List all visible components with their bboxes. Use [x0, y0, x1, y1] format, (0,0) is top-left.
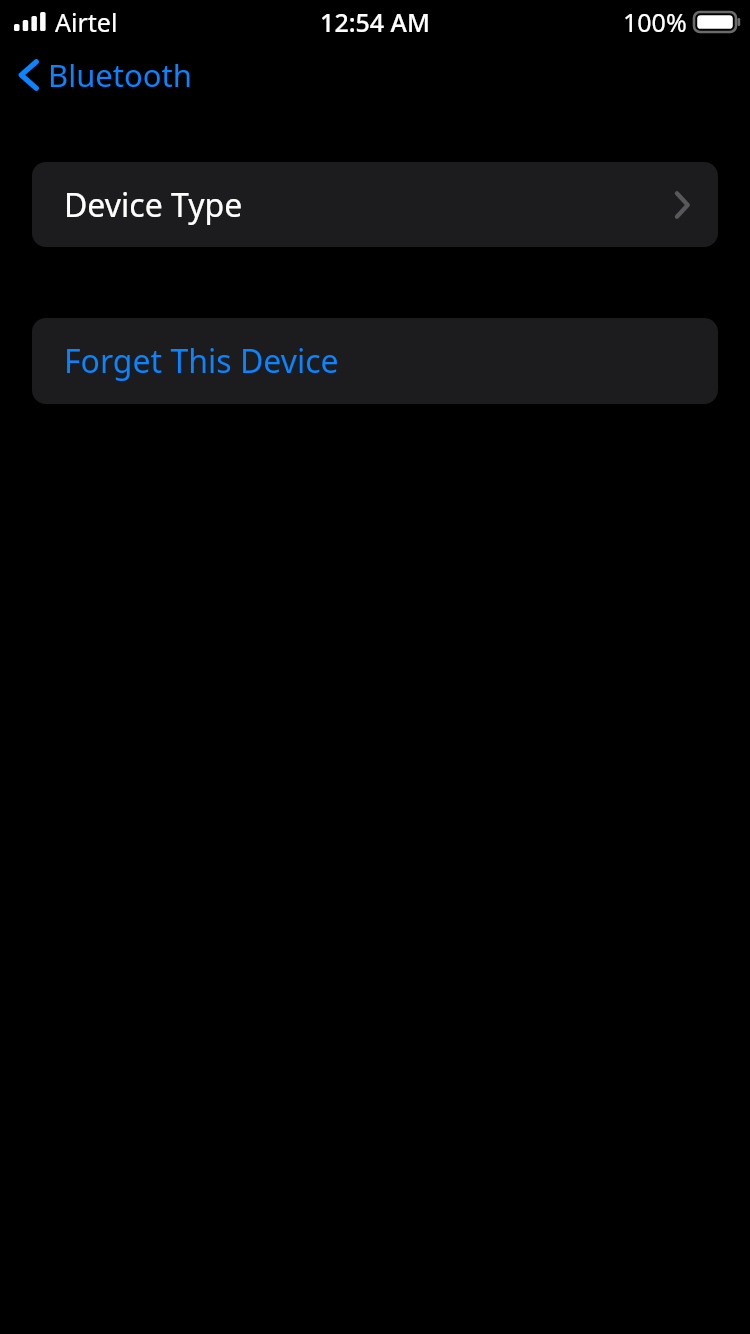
staticText: Device Type — [64, 183, 243, 227]
button[interactable]: Forget This Device — [32, 318, 718, 404]
other: Back — [16, 58, 42, 92]
staticText: Airtel — [55, 5, 118, 39]
button[interactable]: Back — [10, 48, 202, 102]
staticText: 12:54 AM — [320, 5, 430, 39]
button[interactable]: Device Type — [32, 162, 718, 247]
staticText: 100% — [623, 5, 687, 39]
staticText: Forget This Device — [64, 339, 339, 383]
staticText: Bluetooth — [48, 54, 192, 96]
